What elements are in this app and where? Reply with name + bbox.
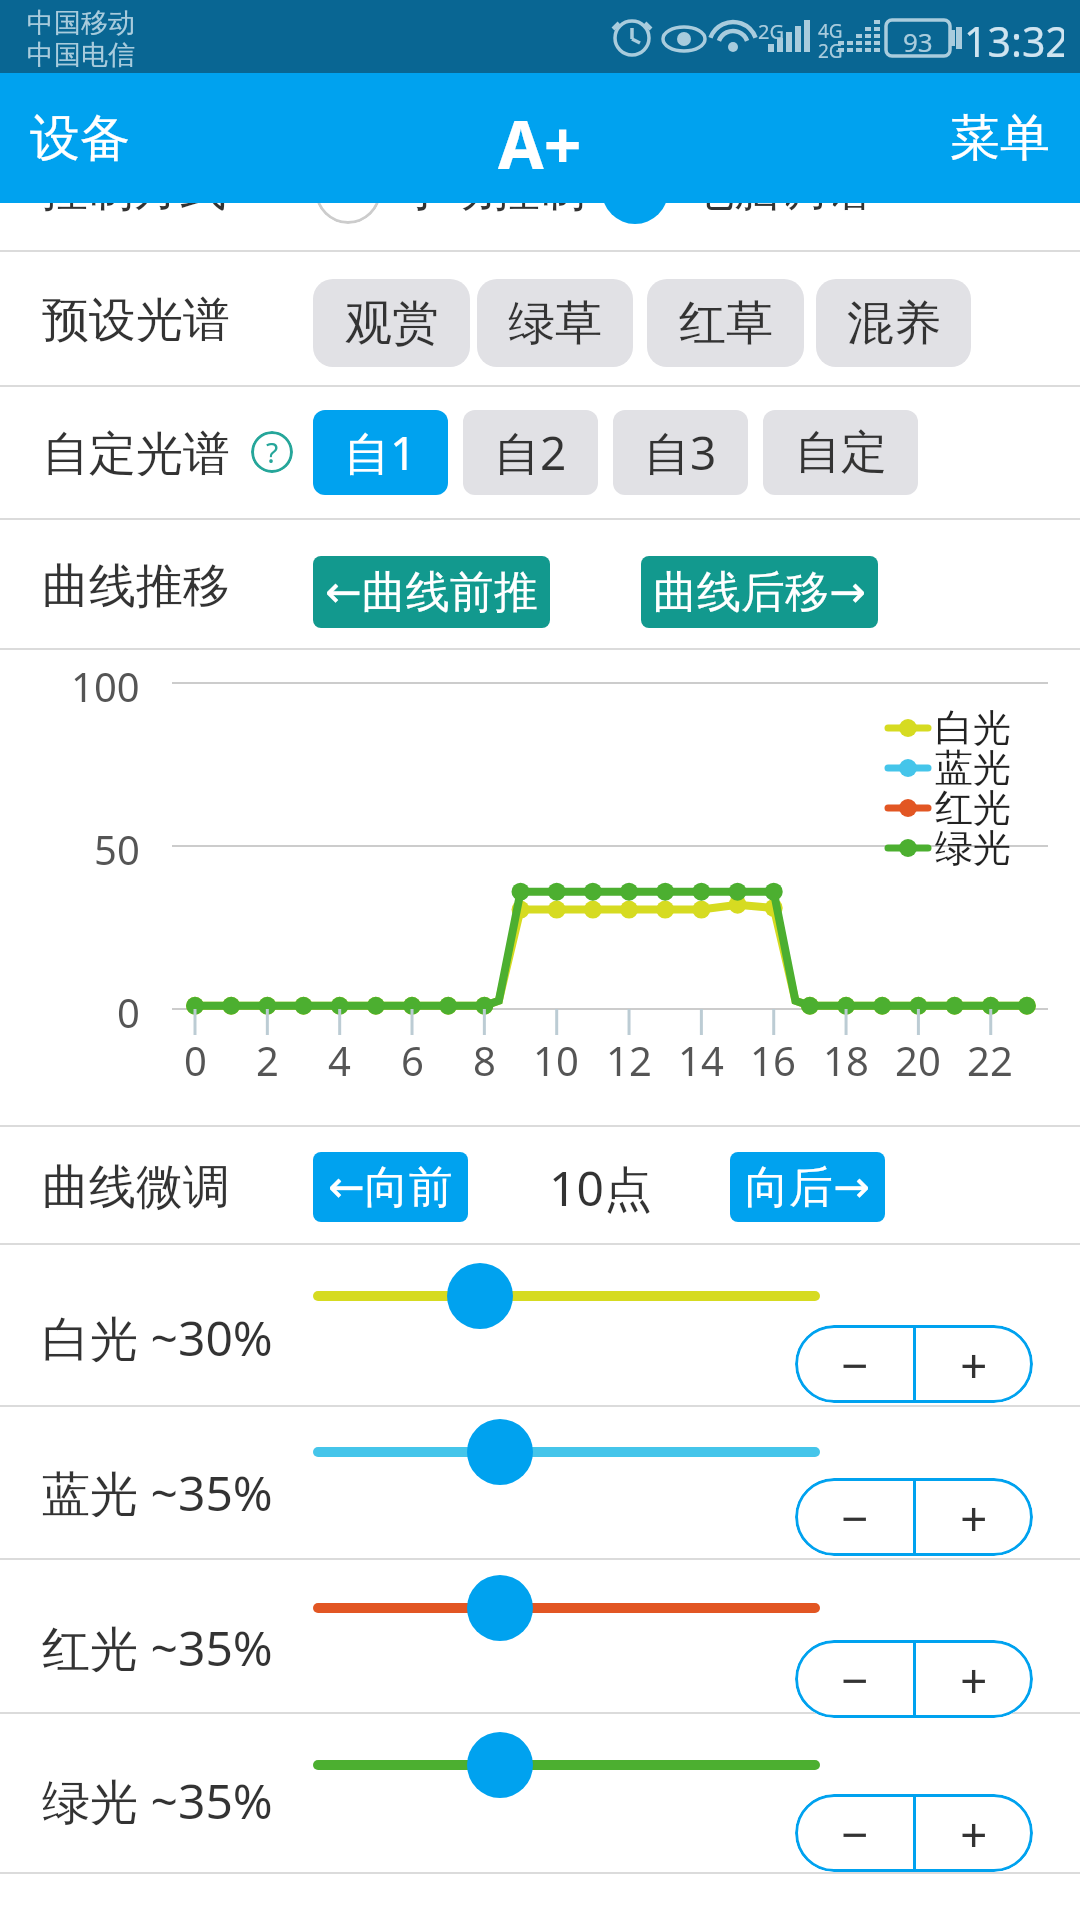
staticText: 18 [823, 1033, 869, 1081]
staticText: 20 [895, 1033, 941, 1081]
staticText: 绿光 [935, 824, 1011, 872]
staticText: 100 [71, 659, 140, 707]
staticText: ←向前 [328, 1160, 453, 1215]
button[interactable]: 向后→ [730, 1152, 885, 1222]
staticText: 红草 [679, 294, 773, 353]
staticText: 0 [117, 985, 140, 1033]
staticText: 8 [473, 1033, 496, 1081]
staticText: 0 [184, 1033, 207, 1081]
staticText: 曲线推移 [42, 557, 230, 611]
staticText: − [841, 1485, 869, 1550]
staticText: 红光 [935, 784, 1011, 832]
staticText: 14 [678, 1033, 724, 1081]
staticText: 自3 [644, 421, 717, 484]
staticText: 自定光谱 [42, 425, 230, 479]
staticText: 中国电信 [27, 38, 135, 68]
staticText: 向后→ [745, 1160, 870, 1215]
staticText: 蓝光 [935, 744, 1011, 792]
staticText: 中国移动 [27, 6, 135, 36]
staticText: + [960, 1332, 988, 1397]
staticText: 电脑调谱 [688, 161, 872, 215]
staticText: 白光 [935, 704, 1011, 752]
button[interactable]: 自定 [763, 410, 918, 495]
button[interactable] [447, 1263, 513, 1329]
staticText: 观赏 [345, 294, 439, 353]
button[interactable]: 自1 [313, 410, 448, 495]
staticText: 自2 [494, 421, 567, 484]
staticText: 4G [818, 18, 843, 38]
staticText: 12 [606, 1033, 652, 1081]
staticText: 自1 [344, 421, 417, 484]
button[interactable]: 设备 [30, 103, 170, 173]
staticText: − [841, 1332, 869, 1397]
staticText: 蓝光 ~35% [42, 1460, 273, 1520]
staticText: 白光 ~30% [42, 1305, 273, 1365]
staticText: 13:32 [964, 13, 1064, 61]
staticText: 绿草 [508, 294, 602, 353]
staticText: 自定 [795, 424, 887, 482]
button[interactable]: + [914, 1640, 1033, 1718]
button[interactable]: 红草 [647, 279, 804, 367]
button[interactable]: + [914, 1325, 1033, 1403]
button[interactable]: − [795, 1478, 914, 1556]
staticText: 2 [256, 1033, 279, 1081]
staticText: 10 [533, 1033, 579, 1081]
staticText: 手动控制 [402, 161, 586, 215]
staticText: 10点 [549, 1155, 652, 1215]
staticText: 混养 [847, 294, 941, 353]
staticText: + [960, 1485, 988, 1550]
staticText: 16 [750, 1033, 796, 1081]
button[interactable]: 曲线后移→ [641, 556, 878, 628]
button[interactable]: + [914, 1478, 1033, 1556]
staticText: ? [266, 433, 279, 471]
staticText: 22 [967, 1033, 1013, 1081]
button[interactable] [467, 1419, 533, 1485]
staticText: 50 [94, 822, 140, 870]
button[interactable]: 自3 [613, 410, 748, 495]
staticText: 设备 [30, 107, 130, 170]
staticText: A+ [498, 98, 582, 178]
staticText: + [960, 1647, 988, 1712]
button[interactable]: 观赏 [313, 279, 470, 367]
staticText: − [841, 1647, 869, 1712]
button[interactable]: 绿草 [477, 279, 633, 367]
staticText: 曲线后移→ [653, 565, 866, 620]
staticText: 93 [903, 24, 933, 52]
button[interactable]: − [795, 1794, 914, 1872]
staticText: 2G [818, 38, 843, 58]
staticText: 6 [401, 1033, 424, 1081]
button[interactable]: + [914, 1794, 1033, 1872]
button[interactable] [467, 1732, 533, 1798]
staticText: 曲线微调 [42, 1158, 230, 1212]
staticText: 绿光 ~35% [42, 1768, 273, 1828]
staticText: 2G [758, 18, 784, 40]
staticText: 红光 ~35% [42, 1615, 273, 1675]
button[interactable]: ←曲线前推 [313, 556, 550, 628]
button[interactable] [467, 1575, 533, 1641]
staticText: + [960, 1801, 988, 1866]
button[interactable]: 自2 [463, 410, 598, 495]
button[interactable]: − [795, 1325, 914, 1403]
staticText: 控制方式 [42, 161, 226, 215]
staticText: 菜单 [950, 107, 1050, 170]
staticText: − [841, 1801, 869, 1866]
button[interactable]: ←向前 [313, 1152, 468, 1222]
staticText: 4 [328, 1033, 351, 1081]
button[interactable]: − [795, 1640, 914, 1718]
staticText: ←曲线前推 [325, 565, 538, 620]
staticText: 预设光谱 [42, 291, 230, 345]
button[interactable]: 混养 [816, 279, 971, 367]
button[interactable]: 菜单 [920, 103, 1050, 173]
